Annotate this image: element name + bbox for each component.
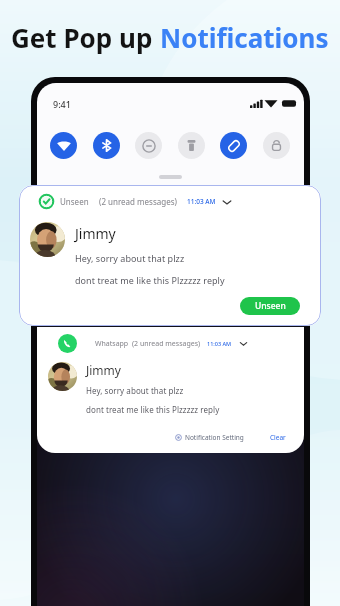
staticText: 11:03 AM [207,340,232,347]
button[interactable]: Do not disturb [135,132,162,159]
staticText: dont treat me like this Plzzzzz reply [86,404,220,415]
staticText: Jimmy [75,224,116,243]
button[interactable]: Unseen [240,297,300,315]
staticText: dont treat me like this Plzzzzz reply [75,274,225,286]
staticText: (2 unread messages) [99,196,177,207]
staticText: 11:03 AM [187,197,216,206]
button[interactable]: Wi-Fi [50,132,77,159]
staticText: 9:41 [53,98,71,110]
staticText: Notifications [160,20,329,55]
staticText: Clear [270,433,286,442]
staticText: Notification Setting [185,433,244,442]
staticText: (2 unread messages) [132,339,201,349]
staticText: Jimmy [86,362,121,378]
button[interactable]: Bluetooth [93,132,120,159]
button[interactable]: Auto rotate [220,132,247,159]
button[interactable]: Flashlight [178,132,205,159]
staticText: Unseen [60,196,89,207]
staticText: Get Pop up [11,20,160,55]
staticText: Unseen [255,300,286,312]
staticText: Hey, sorry about that plzz [86,385,184,396]
button[interactable]: Notification Setting [173,431,246,444]
button[interactable]: Unseen [19,185,321,326]
staticText: Whatsapp [95,339,129,349]
button[interactable]: Whatsapp [37,327,304,453]
staticText: Hey, sorry about that plzz [75,252,185,264]
button[interactable]: Clear [268,431,288,444]
button[interactable]: Screen lock [263,132,290,159]
